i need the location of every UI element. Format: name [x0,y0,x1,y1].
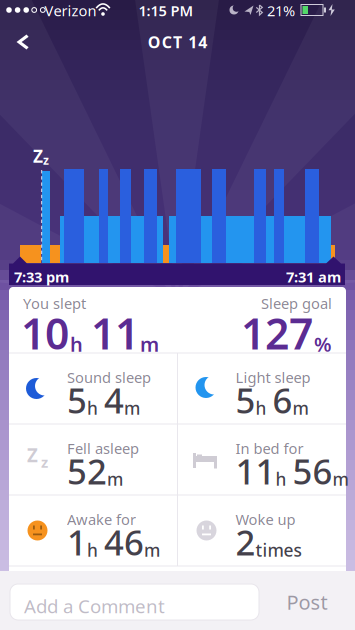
staticText: 11 [235,448,275,494]
staticText: 52 [67,448,107,494]
staticText: 127 [241,304,313,361]
staticText: h [275,467,286,490]
staticText: Sleep goal [261,293,332,313]
staticText: 1 [67,519,87,565]
staticText: z [41,452,48,472]
staticText: 7:31 am [286,267,341,286]
staticText: Add a Comment [24,593,165,618]
staticText: 5 [235,377,255,423]
staticText: 6 [266,377,292,423]
button[interactable] [0,0,355,630]
staticText: 56 [286,448,332,494]
staticText: m [292,396,308,419]
staticText: h [70,331,83,357]
staticText: 4 [98,377,124,423]
staticText: Post [286,589,327,615]
staticText: 46 [98,519,144,565]
staticText: Z [27,443,38,467]
staticText: Awake for [67,509,136,529]
staticText: 7:33 pm [14,267,69,286]
staticText: times [255,538,301,561]
staticText: Z [33,144,43,167]
staticText: m [124,396,140,419]
staticText: 21% [267,1,295,20]
staticText: h [87,538,98,561]
staticText: 2 [235,519,255,565]
staticText: 1:15 PM [138,1,193,20]
staticText: m [332,467,348,490]
staticText: Fell asleep [67,438,139,458]
staticText: m [107,467,123,490]
staticText: Sound sleep [67,367,151,387]
staticText: h [255,396,266,419]
staticText: 11 [91,304,139,361]
staticText: In bed for [235,438,303,458]
staticText: OCT 14 [148,31,207,53]
button[interactable]: Add a Comment [0,0,355,630]
staticText: m [144,538,160,561]
staticText: 5 [67,377,87,423]
button[interactable]: Post [0,0,355,630]
staticText: 10 [21,304,69,361]
staticText: Verizon [44,1,96,20]
staticText: % [314,331,332,357]
staticText: Light sleep [235,367,310,387]
staticText: You slept [23,293,86,313]
staticText: Woke up [235,509,295,529]
staticText: z [43,152,49,168]
staticText: h [87,396,98,419]
staticText: m [140,331,159,357]
